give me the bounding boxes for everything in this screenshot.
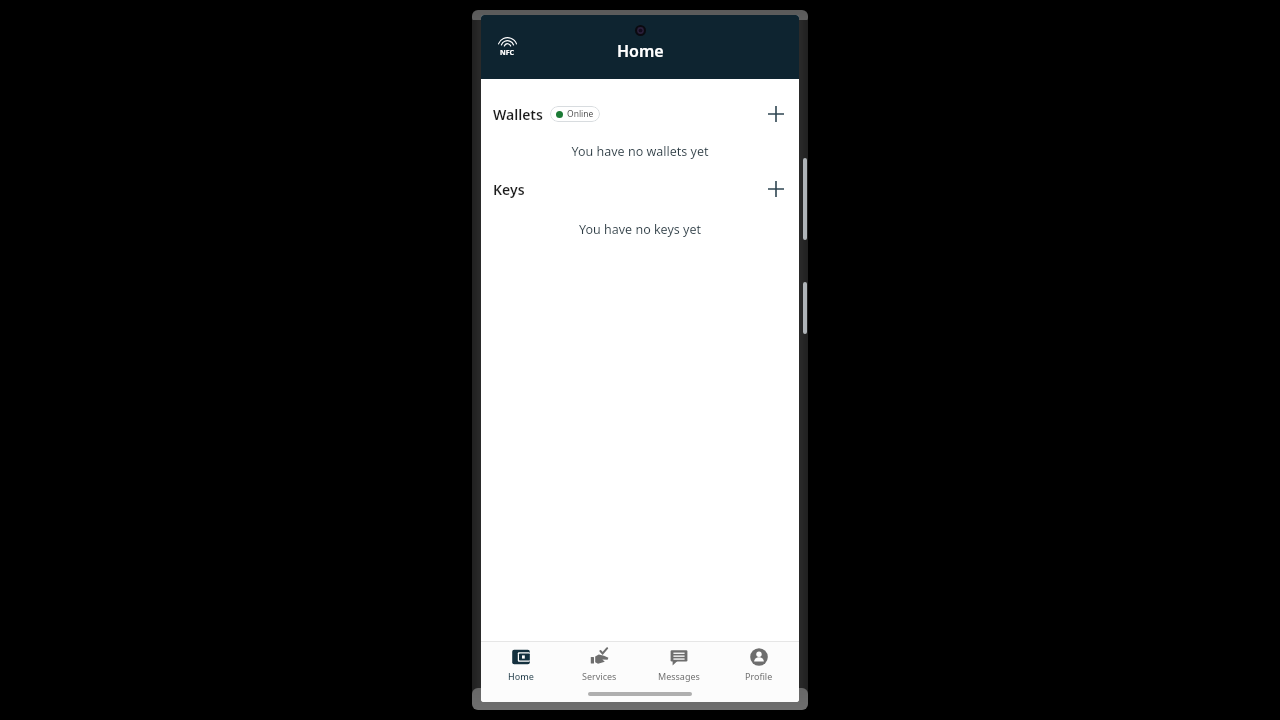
staticText: NFC (500, 48, 515, 58)
button[interactable]: Add key (761, 174, 791, 204)
staticText: Home (617, 40, 664, 62)
staticText: Wallets (493, 105, 543, 124)
staticText: Online (567, 108, 594, 120)
staticText: You have no keys yet (481, 221, 799, 238)
button[interactable]: Online (550, 106, 600, 122)
staticText: Keys (493, 180, 525, 199)
staticText: Messages (658, 670, 700, 682)
button[interactable]: Messages (639, 642, 719, 686)
button[interactable]: Home (481, 642, 560, 686)
staticText: Home (508, 670, 534, 682)
button[interactable]: Profile (719, 642, 799, 686)
button[interactable]: NFC (492, 32, 522, 62)
staticText: You have no wallets yet (481, 143, 799, 160)
button[interactable]: Services (560, 642, 639, 686)
staticText: Services (582, 670, 617, 682)
staticText: Profile (745, 670, 773, 682)
button[interactable]: Add wallet (761, 99, 791, 129)
